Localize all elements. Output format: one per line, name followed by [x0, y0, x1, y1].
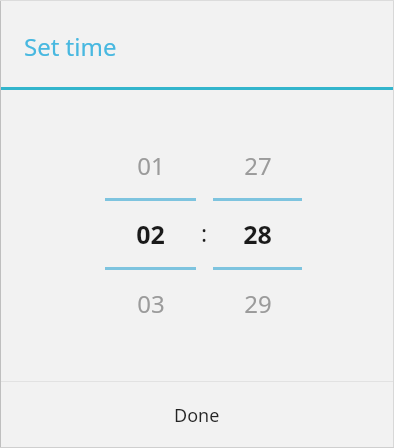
button[interactable]: 29: [213, 270, 302, 336]
staticText: 02: [136, 217, 165, 251]
button[interactable]: 02: [105, 201, 196, 267]
staticText: 27: [244, 149, 272, 182]
button[interactable]: Done: [0, 382, 394, 448]
button[interactable]: 28: [213, 201, 302, 267]
staticText: Set time: [24, 30, 117, 63]
staticText: 29: [244, 287, 272, 320]
button[interactable]: 01: [105, 132, 196, 198]
staticText: :: [201, 217, 208, 248]
staticText: 28: [243, 217, 272, 251]
staticText: 03: [137, 287, 165, 320]
button[interactable]: 03: [105, 270, 196, 336]
staticText: 01: [137, 149, 165, 182]
button[interactable]: 27: [213, 132, 302, 198]
staticText: Done: [174, 403, 220, 428]
